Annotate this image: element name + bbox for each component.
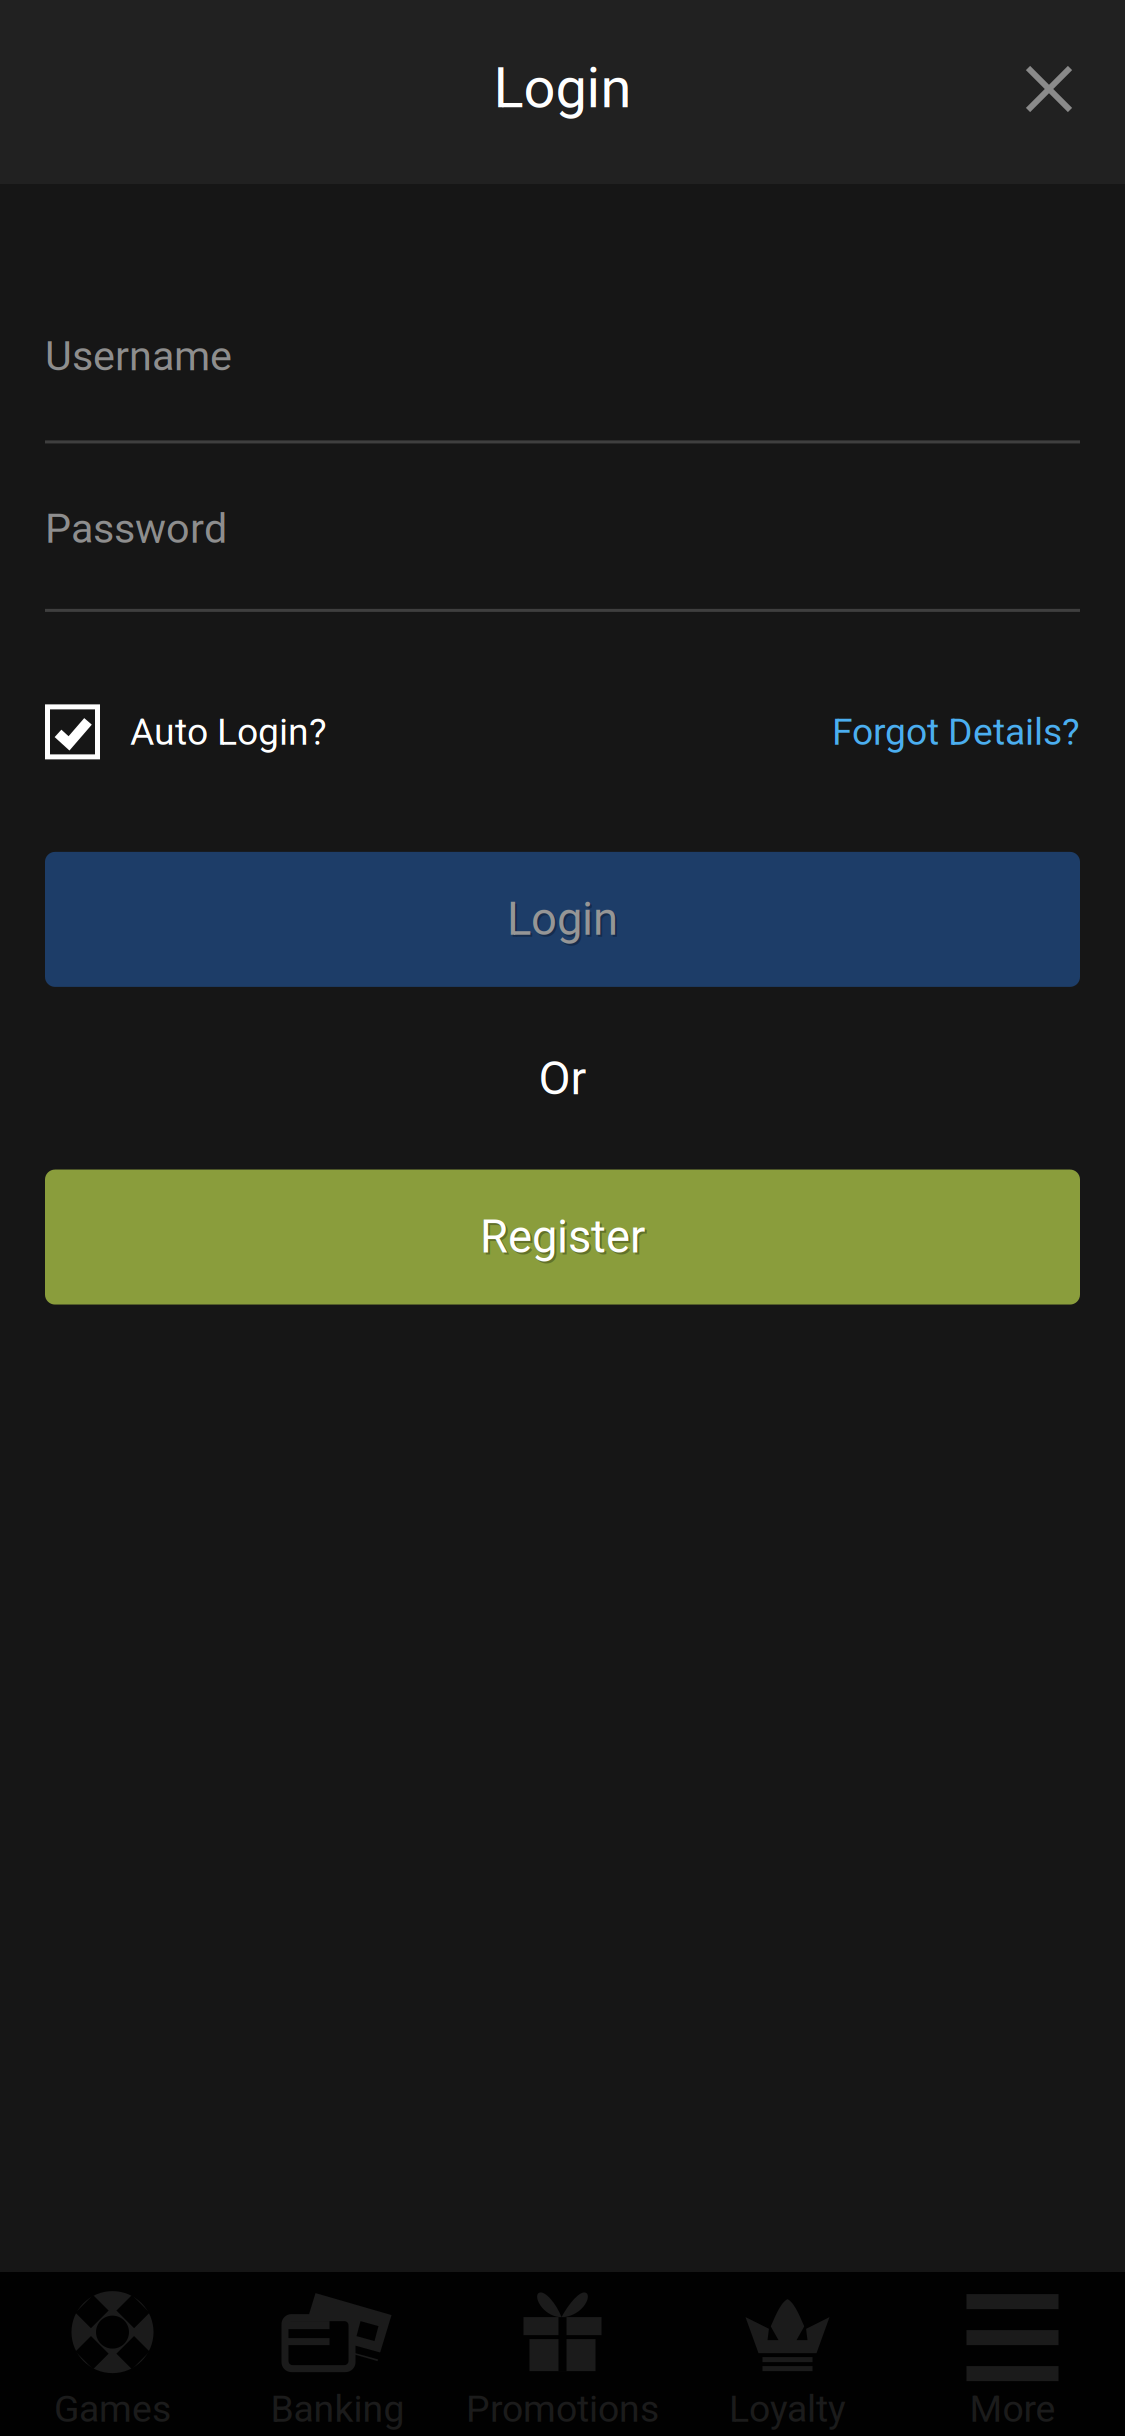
staticText: Games bbox=[54, 2387, 171, 2431]
staticText: Forgot Details? bbox=[832, 710, 1080, 754]
staticText: More bbox=[969, 2387, 1055, 2431]
button[interactable]: Loyalty bbox=[675, 2272, 900, 2436]
staticText: Login bbox=[507, 893, 618, 946]
staticText: Banking bbox=[270, 2387, 404, 2431]
button[interactable]: Banking bbox=[225, 2272, 450, 2436]
button[interactable]: Promotions bbox=[450, 2272, 675, 2436]
button[interactable]: Register bbox=[45, 1170, 1080, 1305]
button[interactable]: Games bbox=[0, 2272, 225, 2436]
button[interactable]: Auto Login? bbox=[45, 704, 327, 760]
staticText: Promotions bbox=[466, 2387, 659, 2431]
staticText: Username bbox=[45, 332, 232, 380]
staticText: Register bbox=[482, 1212, 647, 1266]
staticText: Login bbox=[509, 895, 620, 948]
staticText: Register bbox=[480, 1210, 645, 1264]
button[interactable]: Forgot Details? bbox=[832, 704, 1080, 760]
staticText: Loyalty bbox=[729, 2387, 846, 2431]
button[interactable]: Close bbox=[985, 33, 1113, 151]
staticText: Login bbox=[493, 55, 631, 121]
button[interactable]: Login bbox=[45, 852, 1080, 987]
staticText: Password bbox=[45, 504, 227, 553]
button[interactable]: More bbox=[900, 2272, 1125, 2436]
staticText: Or bbox=[538, 1051, 586, 1106]
staticText: Auto Login? bbox=[130, 710, 327, 754]
